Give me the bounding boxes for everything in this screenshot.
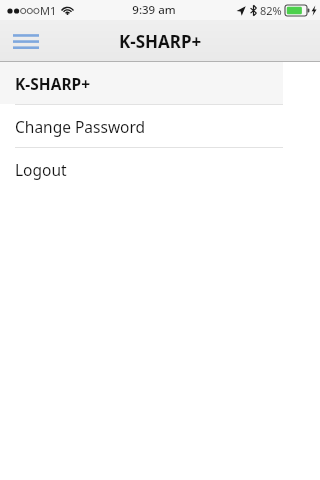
staticText: K-SHARP+ [15, 73, 91, 94]
button[interactable]: K-SHARP+ [0, 62, 283, 104]
staticText: 9:39 am [132, 2, 176, 18]
button[interactable]: Logout [0, 148, 283, 190]
button[interactable]: Menu [6, 21, 46, 61]
button[interactable]: Change Password [0, 105, 283, 147]
staticText: 82% [260, 3, 282, 18]
staticText: Logout [15, 159, 67, 180]
staticText: Change Password [15, 116, 146, 137]
staticText: K-SHARP+ [119, 30, 202, 53]
staticText: M1 [40, 3, 57, 18]
